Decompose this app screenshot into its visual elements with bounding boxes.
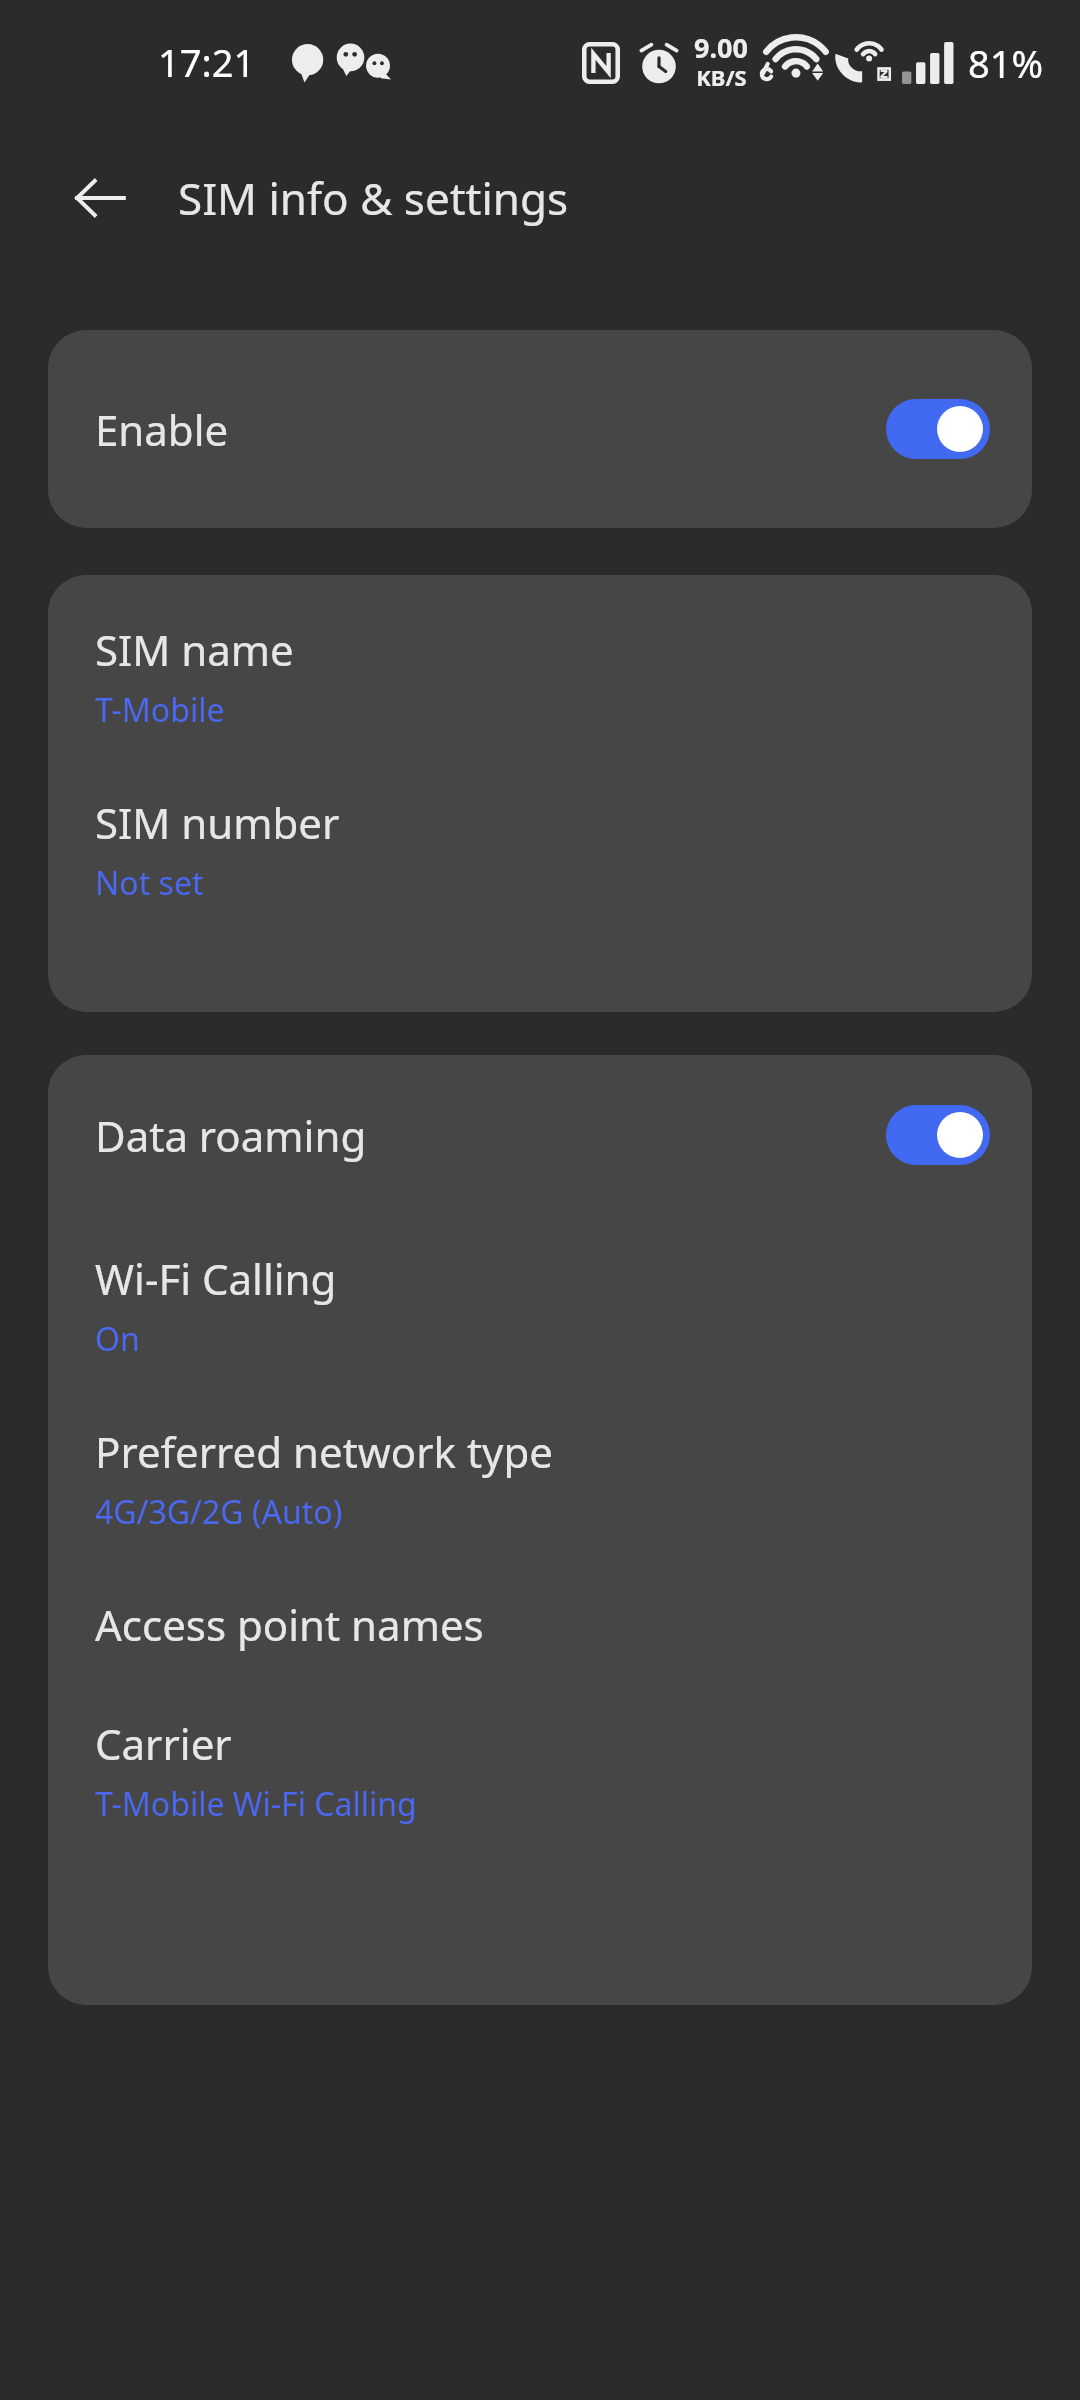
staticText: SIM number <box>95 794 340 851</box>
button[interactable]: Preferred network type <box>48 1423 1032 1534</box>
staticText: Not set <box>95 861 204 905</box>
staticText: 17:21 <box>158 36 256 88</box>
button[interactable]: SIM number <box>48 794 1032 905</box>
staticText: Data roaming <box>95 1107 886 1164</box>
button[interactable]: Access point names <box>48 1596 1032 1653</box>
button[interactable]: Toggle on <box>886 399 990 459</box>
staticText: On <box>95 1317 140 1361</box>
button[interactable]: Carrier <box>48 1715 1032 1826</box>
button[interactable]: Back <box>58 156 142 240</box>
button[interactable]: SIM name <box>48 621 1032 732</box>
staticText: SIM info & settings <box>178 168 569 228</box>
staticText: Access point names <box>95 1596 484 1653</box>
button[interactable]: Toggle on <box>886 1105 990 1165</box>
staticText: KB/S <box>696 62 747 92</box>
button[interactable]: Data roaming <box>48 1055 1032 1215</box>
staticText: SIM name <box>95 621 294 678</box>
button[interactable]: Wi-Fi Calling <box>48 1250 1032 1361</box>
staticText: 9.00 <box>694 29 748 66</box>
staticText: 81% <box>968 37 1044 89</box>
staticText: Enable <box>95 401 886 458</box>
staticText: Wi-Fi Calling <box>95 1250 337 1307</box>
staticText: T-Mobile Wi-Fi Calling <box>95 1782 417 1826</box>
staticText: Carrier <box>95 1715 232 1772</box>
button[interactable]: Enable <box>48 330 1032 528</box>
staticText: Preferred network type <box>95 1423 554 1480</box>
staticText: T-Mobile <box>95 688 225 732</box>
staticText: 4G/3G/2G (Auto) <box>95 1490 343 1534</box>
